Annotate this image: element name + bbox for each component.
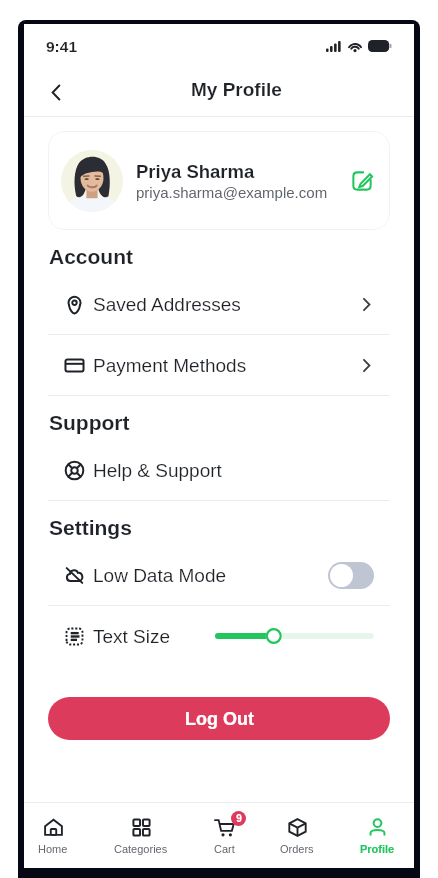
button[interactable]: Help & Support (24, 440, 414, 500)
staticText: Orders (280, 843, 314, 855)
button[interactable]: Edit profile (350, 169, 374, 193)
staticText: Saved Addresses (93, 294, 241, 315)
staticText: My Profile (191, 79, 282, 100)
button[interactable]: Text size slider (210, 626, 374, 646)
staticText: Account (49, 245, 133, 268)
staticText: Log Out (185, 709, 254, 729)
button[interactable]: Home (38, 811, 68, 861)
staticText: Low Data Mode (93, 565, 227, 586)
staticText: priya.sharma@example.com (136, 184, 328, 201)
button[interactable]: Log Out (48, 697, 390, 740)
button[interactable]: Low Data Mode (24, 545, 414, 605)
button[interactable]: Back (40, 76, 72, 108)
staticText: 9 (236, 813, 242, 824)
staticText: Help & Support (93, 460, 222, 481)
staticText: 9:41 (46, 38, 78, 55)
staticText: Priya Sharma (136, 161, 255, 182)
button[interactable]: Orders (280, 811, 314, 861)
staticText: Settings (49, 516, 132, 539)
button[interactable]: Saved Addresses (24, 274, 414, 334)
staticText: Profile (360, 843, 395, 855)
staticText: Support (49, 411, 130, 434)
button[interactable]: Profile (360, 811, 395, 861)
staticText: Home (38, 843, 68, 855)
staticText: Cart (214, 843, 235, 855)
button[interactable]: Categories (114, 811, 168, 861)
staticText: Payment Methods (93, 355, 247, 376)
button[interactable]: Priya Sharma (48, 131, 390, 230)
staticText: Text Size (93, 626, 171, 647)
button[interactable]: Payment Methods (24, 335, 414, 395)
staticText: Categories (114, 843, 168, 855)
button[interactable]: 9 (214, 811, 235, 861)
